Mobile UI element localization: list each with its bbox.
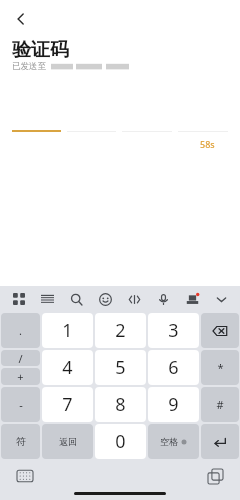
button[interactable]: #	[201, 387, 239, 422]
button[interactable]: *	[201, 350, 239, 385]
button[interactable]: 5	[95, 350, 146, 385]
button[interactable]: 3	[148, 313, 199, 348]
staticText: 验证码	[12, 38, 69, 62]
staticText: 58s	[200, 138, 215, 150]
button[interactable]: 返回	[42, 424, 93, 459]
button[interactable]: Apps	[4, 286, 33, 312]
button[interactable]: -	[1, 387, 40, 422]
button[interactable]: Theme	[178, 286, 207, 312]
button[interactable]: 9	[148, 387, 199, 422]
button[interactable]: 1	[42, 313, 93, 348]
button[interactable]: Backspace	[201, 313, 239, 348]
button[interactable]: Translate	[120, 286, 149, 312]
button[interactable]	[178, 120, 228, 132]
button[interactable]	[12, 120, 61, 132]
button[interactable]: 4	[42, 350, 93, 385]
staticText: #	[216, 397, 224, 412]
button[interactable]	[122, 120, 172, 132]
button[interactable]: Emoji	[91, 286, 120, 312]
staticText: 9	[168, 392, 179, 417]
staticText: 空格	[160, 436, 178, 447]
button[interactable]: +	[1, 368, 40, 385]
staticText: 3	[168, 318, 179, 343]
button[interactable]: Clipboard	[204, 465, 226, 487]
staticText: 2	[115, 318, 126, 343]
staticText: 符	[16, 435, 26, 448]
button[interactable]: 7	[42, 387, 93, 422]
staticText: 0	[115, 429, 126, 454]
button[interactable]: Enter	[201, 424, 239, 459]
staticText: .	[19, 323, 22, 338]
button[interactable]: Switch keyboard	[14, 465, 36, 487]
staticText: +	[17, 369, 24, 384]
staticText: 4	[62, 355, 73, 380]
button[interactable]: Hide keyboard	[207, 286, 236, 312]
staticText: 已发送至	[12, 61, 46, 72]
button[interactable]: Back	[6, 4, 36, 34]
staticText: 6	[168, 355, 179, 380]
button[interactable]: 符	[1, 424, 40, 459]
staticText: 7	[62, 392, 73, 417]
button[interactable]: Search	[62, 286, 91, 312]
staticText: *	[217, 360, 224, 375]
button[interactable]: 0	[95, 424, 146, 459]
button[interactable]: .	[1, 313, 40, 348]
button[interactable]: Keyboard layout	[33, 286, 62, 312]
button[interactable]: 6	[148, 350, 199, 385]
staticText: /	[18, 351, 23, 366]
staticText: -	[19, 397, 23, 412]
staticText: 8	[115, 392, 126, 417]
staticText: 1	[62, 318, 73, 343]
staticText: 5	[115, 355, 126, 380]
staticText: 返回	[59, 436, 77, 447]
button[interactable]	[67, 120, 116, 132]
button[interactable]: 2	[95, 313, 146, 348]
button[interactable]: 8	[95, 387, 146, 422]
button[interactable]: 58s	[200, 138, 215, 150]
button[interactable]: /	[1, 350, 40, 366]
button[interactable]: 空格	[148, 424, 199, 459]
button[interactable]: Voice input	[149, 286, 178, 312]
